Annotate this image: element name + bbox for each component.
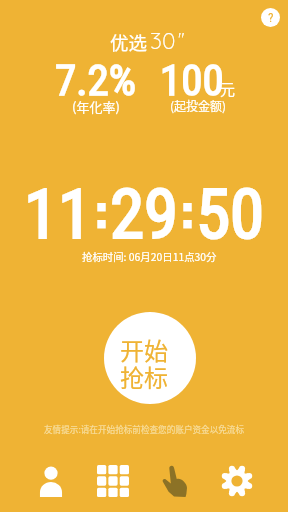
staticText: 11 [24, 174, 93, 255]
button[interactable]: Profile [20, 450, 82, 512]
staticText: 50 [196, 174, 265, 255]
button[interactable]: Apps [82, 450, 144, 512]
staticText: 29 [110, 174, 179, 255]
staticText: ? [268, 10, 274, 25]
staticText: 30 [150, 26, 176, 55]
button[interactable]: Bid [144, 450, 206, 512]
staticText: 开始 抢标 [120, 332, 168, 394]
staticText: " [178, 27, 185, 50]
staticText: 元 [220, 78, 236, 100]
staticText: 100 [160, 55, 224, 105]
staticText: (起投金额) [170, 97, 227, 114]
button[interactable]: 开始 抢标 [104, 312, 196, 404]
button[interactable]: Settings [206, 450, 268, 512]
button[interactable]: Help [261, 8, 280, 27]
staticText: (年化率) [72, 97, 120, 116]
staticText: 优选 [110, 29, 148, 56]
staticText: 7.2% [55, 55, 137, 105]
staticText: 友情提示:请在开始抢标前检查您的账户资金以免流标 [44, 423, 245, 435]
staticText: 抢标时间: 06月20日11点30分 [82, 249, 217, 264]
